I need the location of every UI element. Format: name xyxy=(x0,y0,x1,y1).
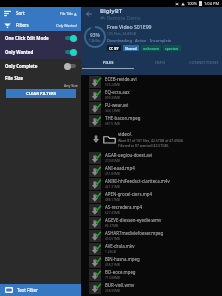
staticText: BiglyBT xyxy=(100,7,123,15)
staticText: CONNECTIONS xyxy=(189,60,219,65)
staticText: 1:04 PM xyxy=(204,1,220,6)
button[interactable]: Downloaded file xyxy=(0,114,222,127)
button[interactable]: FILES xyxy=(82,52,134,75)
button[interactable]: Downloaded file xyxy=(89,89,101,101)
button[interactable]: Only Complete xyxy=(0,59,81,73)
button[interactable]: Downloaded file xyxy=(0,75,222,88)
button[interactable]: Downloaded file xyxy=(89,204,101,216)
staticText: ANI-eaad.mp4 xyxy=(105,165,135,171)
button[interactable]: Text Filter xyxy=(0,284,81,296)
button[interactable]: Downloaded file xyxy=(89,165,101,177)
button[interactable]: Filters xyxy=(0,19,81,31)
staticText: CLEAR FILTERS xyxy=(26,91,57,97)
staticText: File Title ▲ xyxy=(60,11,77,16)
staticText: File Size xyxy=(5,75,24,81)
button[interactable]: Downloaded file xyxy=(89,243,101,255)
button[interactable]: Downloaded file xyxy=(89,115,101,127)
button[interactable]: Sort xyxy=(0,7,81,19)
button[interactable]: CC BY xyxy=(109,45,119,51)
button[interactable]: Downloaded file xyxy=(0,151,222,164)
staticText: Only Wanted xyxy=(56,23,77,28)
button[interactable]: spartan xyxy=(165,45,179,51)
staticText: INFO xyxy=(155,60,166,65)
staticText: 268.90MB xyxy=(105,289,120,293)
staticText: 93% xyxy=(90,32,100,39)
button[interactable]: Downloaded file xyxy=(89,217,101,229)
staticText: ASHAR7medivlefoeser.mpeg xyxy=(105,230,164,236)
staticText: 351.80MB xyxy=(105,172,120,176)
button[interactable]: Only Wanted xyxy=(0,45,81,59)
button[interactable]: Downloaded file xyxy=(0,229,222,242)
button[interactable]: Back xyxy=(0,7,222,21)
staticText: Any Size xyxy=(64,83,78,88)
button[interactable]: File Size xyxy=(0,73,81,89)
button[interactable]: Downloaded file xyxy=(0,177,222,190)
staticText: Text Filter xyxy=(17,287,38,293)
staticText: 1.29GB xyxy=(105,250,116,254)
button[interactable]: Downloaded file xyxy=(0,101,222,114)
staticText: 458.21MB xyxy=(105,263,120,267)
staticText: AGEVE-diessen-eyedie.wmv xyxy=(105,217,162,223)
button[interactable]: Back xyxy=(84,9,94,19)
staticText: THE-bacon.mpeg xyxy=(105,115,141,121)
staticText: 100% xyxy=(187,1,198,6)
button[interactable]: Downloaded file xyxy=(0,203,222,216)
button[interactable]: Downloaded file xyxy=(89,76,101,88)
button[interactable]: Downloaded file xyxy=(89,256,101,268)
staticText: 450.51MB xyxy=(105,237,120,241)
button[interactable]: Downloaded file xyxy=(89,230,101,242)
staticText: 274.85MB xyxy=(105,159,120,163)
button[interactable]: Downloaded file xyxy=(0,242,222,255)
button[interactable]: One Click Edit Mode xyxy=(0,31,81,45)
button[interactable]: Downloaded file xyxy=(0,88,222,101)
staticText: 488.17MB xyxy=(105,198,120,202)
staticText: CC BY xyxy=(109,46,119,51)
button[interactable]: Downloaded file xyxy=(0,281,222,294)
staticText: 535.24MB xyxy=(105,83,120,87)
button[interactable]: INFO xyxy=(134,52,186,75)
staticText: Free Video S01E99 xyxy=(107,23,152,30)
button[interactable]: CONNECTIONS xyxy=(186,52,222,75)
staticText: AGAR-uegiou-doest.avi xyxy=(105,152,153,158)
button[interactable]: Downloaded file xyxy=(89,282,101,294)
button[interactable]: Downloaded file xyxy=(89,152,101,164)
button[interactable]: Downloaded file xyxy=(0,268,222,281)
button[interactable]: Downloaded file xyxy=(0,164,222,177)
staticText: unknown xyxy=(143,46,159,51)
button[interactable]: Downloaded file xyxy=(89,191,101,203)
button[interactable]: Downloaded file xyxy=(89,178,101,190)
button[interactable]: Downloaded file xyxy=(0,216,222,229)
staticText: Shared xyxy=(125,46,137,51)
staticText: Filters xyxy=(16,22,29,28)
button[interactable]: Downloaded file xyxy=(0,255,222,268)
button[interactable]: CLEAR FILTERS xyxy=(6,89,76,98)
button[interactable]: unknown xyxy=(143,45,159,51)
staticText: Downloading xyxy=(107,38,132,43)
button[interactable]: Downloaded file xyxy=(0,190,222,203)
staticText: AVE-drala.mkv xyxy=(105,243,135,249)
button[interactable]: Downloaded file xyxy=(89,269,101,281)
staticText: Only Wanted xyxy=(5,49,34,55)
button[interactable]: 93% xyxy=(0,21,222,52)
staticText: 86.37MB xyxy=(105,224,119,228)
staticText: 1.3k/Sec xyxy=(89,39,101,43)
staticText: FILES xyxy=(103,60,114,65)
staticText: BIN-hasna.mpeg xyxy=(105,256,140,262)
button[interactable]: video\ xyxy=(0,127,222,151)
staticText: spartan xyxy=(165,46,179,51)
staticText: Remote Demo xyxy=(107,15,141,21)
button[interactable]: Downloaded file xyxy=(89,102,101,114)
staticText: ANIKI-hhiFeedsct-ciartteca.m4v xyxy=(105,178,170,184)
staticText: 421.31MB xyxy=(105,185,120,189)
staticText: Filtered to 87 wanted (42.57GB). xyxy=(118,143,169,148)
staticText: Sort xyxy=(16,10,25,16)
staticText: APEN-grocel-ciers.mp4 xyxy=(105,191,152,197)
staticText: 713.88MB xyxy=(105,276,120,280)
staticText: 105 Files, 44.89GB xyxy=(107,31,136,36)
staticText: Only Complete xyxy=(5,63,38,69)
button[interactable]: Shared xyxy=(125,45,137,51)
staticText: video\ xyxy=(118,131,132,137)
staticText: ECEB-revide.avi xyxy=(105,76,137,82)
staticText: FU-wear.avi xyxy=(105,102,129,108)
staticText: EQ-ecra.aax xyxy=(105,89,130,95)
